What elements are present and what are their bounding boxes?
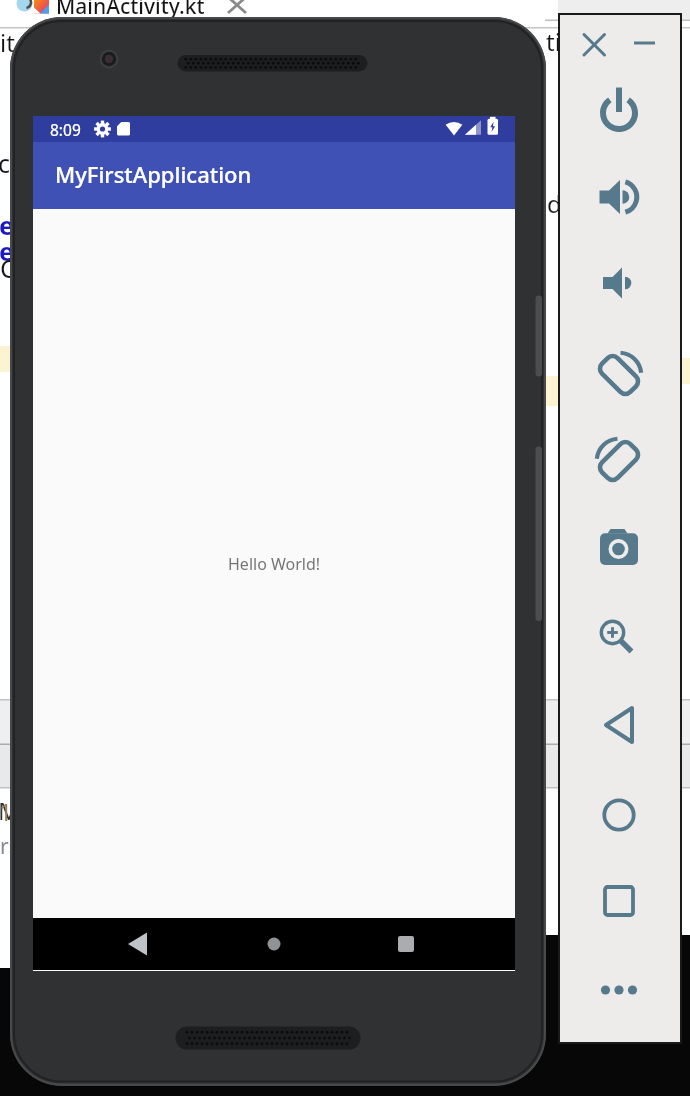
button[interactable] [591,787,647,843]
staticText: M [0,794,20,827]
button[interactable] [119,924,159,964]
staticText: it [0,26,15,59]
button[interactable] [591,697,647,753]
staticText: ti [546,25,561,58]
staticText: MainActivity.kt [56,0,205,21]
staticText: C [0,251,16,285]
staticText: dl [547,187,568,220]
button[interactable] [386,924,426,964]
button[interactable] [591,255,647,311]
staticText: Hello World! [228,553,321,575]
button[interactable] [626,26,663,63]
staticText: 8:09 [50,119,81,140]
button[interactable] [591,341,647,397]
staticText: rs [0,832,19,861]
staticText: e [0,234,14,268]
staticText: e [0,208,14,242]
button[interactable] [591,427,647,483]
button[interactable] [591,83,647,139]
button[interactable] [591,873,647,929]
button[interactable] [591,519,647,575]
button[interactable] [591,608,647,664]
staticText: MyFirstApplication [55,159,252,189]
button[interactable] [254,924,294,964]
button[interactable] [576,26,613,63]
button[interactable] [591,169,647,225]
staticText: c [0,146,11,180]
button[interactable] [591,962,647,1018]
staticText: 1 [0,796,13,827]
